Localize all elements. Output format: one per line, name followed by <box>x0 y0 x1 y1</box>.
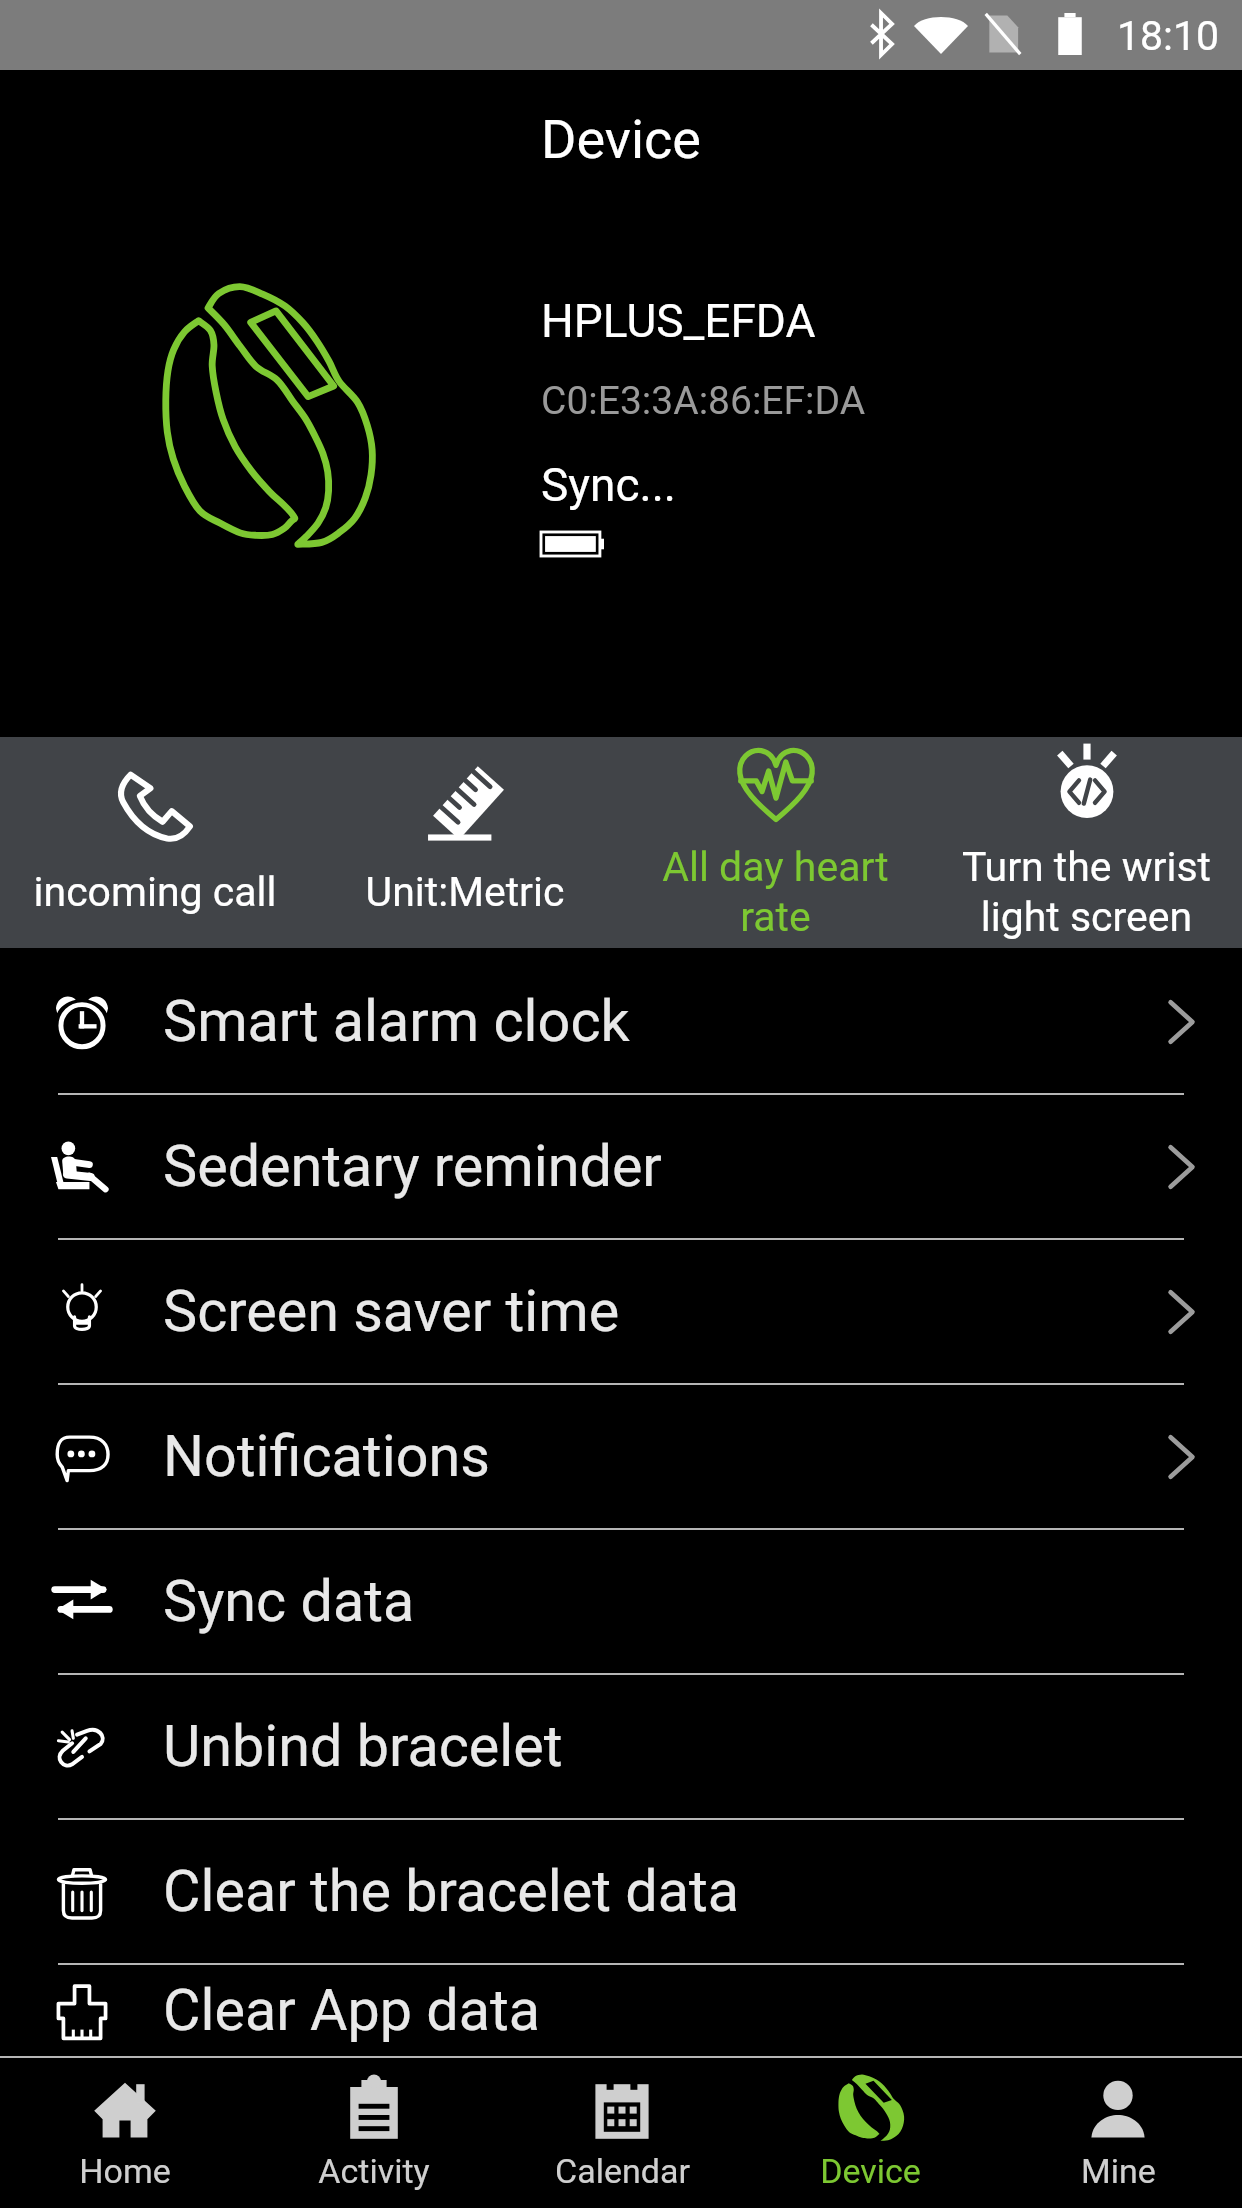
button[interactable]: Calendar <box>498 2058 746 2208</box>
staticText: incoming call <box>0 868 310 916</box>
staticText: Sync... <box>541 458 676 512</box>
staticText: Device <box>820 2151 921 2191</box>
staticText: Home <box>79 2151 171 2191</box>
button[interactable]: Unit:Metric <box>310 737 620 948</box>
button[interactable]: Device <box>746 2058 994 2208</box>
staticText: Sync data <box>163 1568 1207 1635</box>
button[interactable]: Sedentary reminder <box>0 1095 1242 1238</box>
staticText: Turn the wrist light screen <box>931 843 1242 941</box>
staticText: Calendar <box>555 2151 690 2191</box>
button[interactable]: Notifications <box>0 1385 1242 1528</box>
button[interactable]: All day heart rate <box>620 737 931 948</box>
button[interactable]: Activity <box>249 2058 498 2208</box>
staticText: Unit:Metric <box>310 868 620 916</box>
button[interactable]: Smart alarm clock <box>0 950 1242 1093</box>
staticText: Mine <box>1081 2151 1156 2191</box>
staticText: Activity <box>318 2151 430 2191</box>
staticText: 18:10 <box>1117 12 1220 60</box>
button[interactable]: Unbind bracelet <box>0 1675 1242 1818</box>
staticText: Notifications <box>163 1423 1155 1490</box>
staticText: Clear App data <box>163 1977 1207 2044</box>
button[interactable]: incoming call <box>0 737 310 948</box>
button[interactable]: Mine <box>994 2058 1242 2208</box>
staticText: HPLUS_EFDA <box>541 294 816 348</box>
staticText: C0:E3:3A:86:EF:DA <box>541 378 866 424</box>
staticText: Unbind bracelet <box>163 1713 1207 1780</box>
staticText: Screen saver time <box>163 1278 1155 1345</box>
button[interactable]: Clear App data <box>0 1965 1242 2056</box>
button[interactable]: Sync data <box>0 1530 1242 1673</box>
button[interactable]: Home <box>0 2058 249 2208</box>
staticText: Smart alarm clock <box>163 988 1155 1055</box>
button[interactable]: Clear the bracelet data <box>0 1820 1242 1963</box>
button[interactable]: Turn the wrist light screen <box>931 737 1242 948</box>
staticText: All day heart rate <box>620 843 931 941</box>
staticText: Clear the bracelet data <box>163 1858 1207 1925</box>
staticText: Device <box>541 108 701 171</box>
staticText: Sedentary reminder <box>163 1133 1155 1200</box>
button[interactable]: Screen saver time <box>0 1240 1242 1383</box>
